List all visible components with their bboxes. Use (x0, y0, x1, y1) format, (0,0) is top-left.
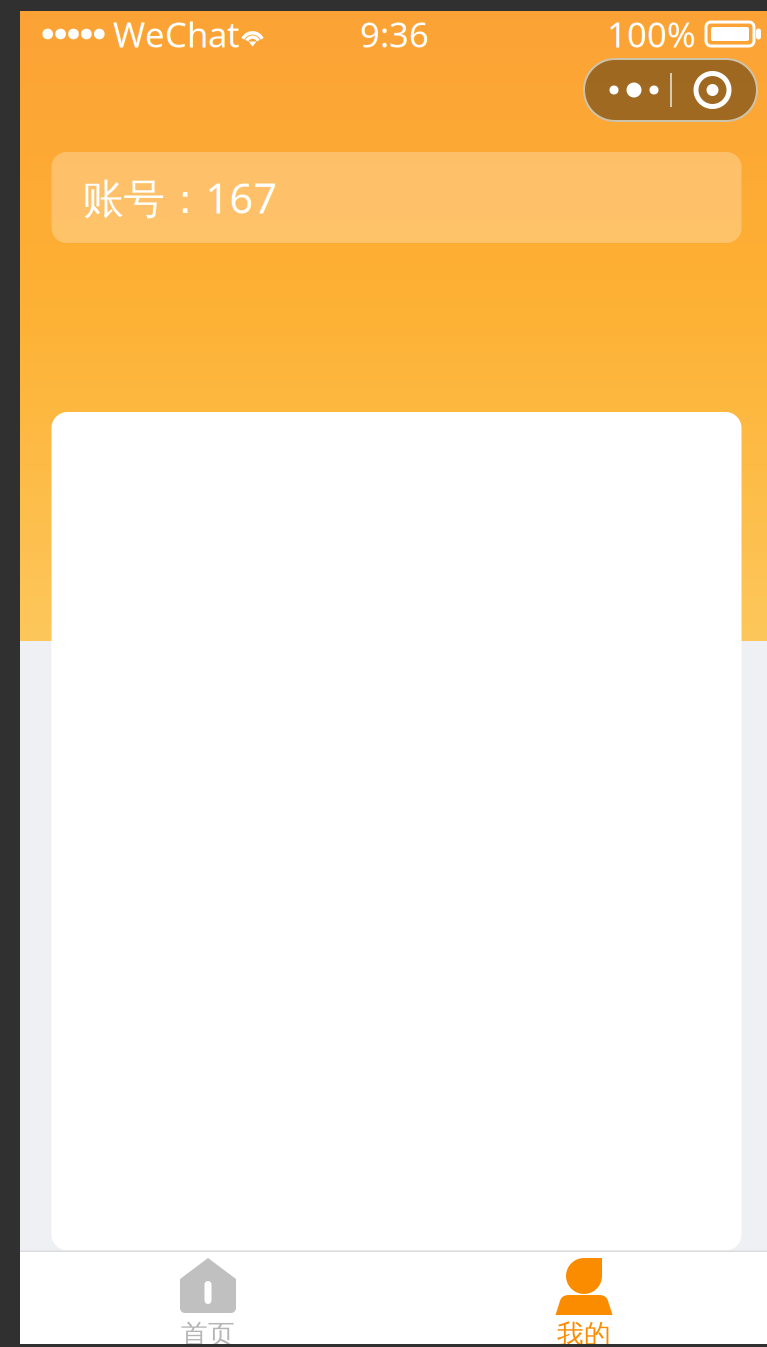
button[interactable]: 首页 (113, 1252, 303, 1344)
staticText: 首页 (181, 1318, 235, 1347)
button[interactable]: Mini program menu (584, 59, 757, 121)
staticText: 100% (607, 11, 696, 57)
staticText: WeChat (113, 11, 240, 57)
staticText: 账号：167 (82, 170, 277, 225)
button[interactable]: 账号：167 (51, 152, 741, 243)
button[interactable]: 我的 (489, 1252, 679, 1344)
staticText: 9:36 (360, 11, 429, 57)
staticText: 我的 (557, 1318, 611, 1347)
